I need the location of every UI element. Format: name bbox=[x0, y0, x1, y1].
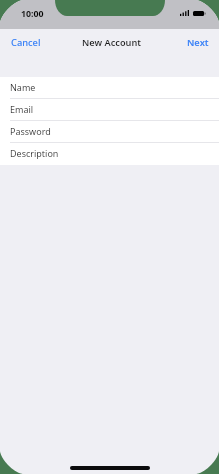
button[interactable]: Name bbox=[0, 77, 219, 99]
staticText: Password bbox=[10, 125, 51, 137]
other: Cellular signal strength bbox=[180, 10, 189, 16]
staticText: Cancel bbox=[11, 36, 41, 49]
other: Battery full bbox=[193, 11, 206, 16]
button[interactable]: Next bbox=[177, 31, 219, 54]
button[interactable]: Password bbox=[0, 121, 219, 143]
button[interactable]: Email bbox=[0, 99, 219, 121]
button[interactable]: Cancel bbox=[0, 31, 52, 54]
staticText: New Account bbox=[82, 36, 142, 49]
staticText: 10:00 bbox=[21, 8, 44, 20]
button[interactable]: Description bbox=[0, 143, 219, 165]
staticText: Name bbox=[10, 81, 36, 93]
staticText: Description bbox=[10, 147, 59, 159]
staticText: Next bbox=[187, 36, 209, 49]
staticText: Email bbox=[10, 103, 34, 115]
